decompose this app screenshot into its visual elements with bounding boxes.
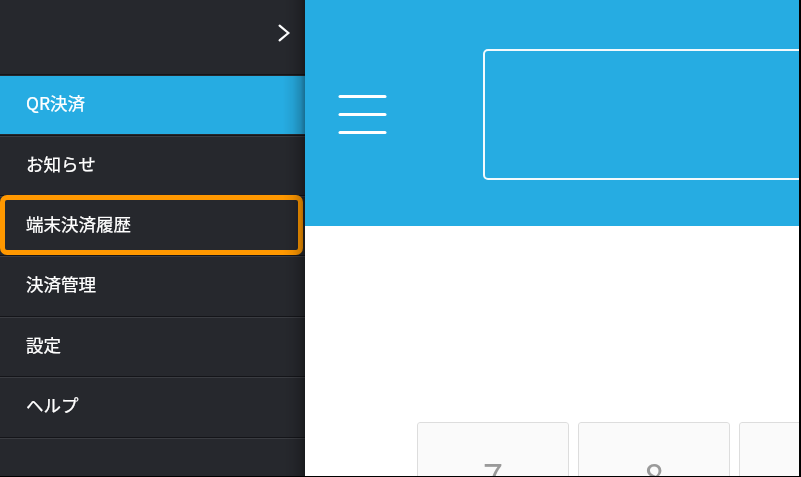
button[interactable]: Menu <box>331 87 393 141</box>
button[interactable]: 9 <box>739 422 801 477</box>
button[interactable]: 決済管理 <box>0 255 305 315</box>
button[interactable]: 端末決済履歴 <box>0 195 305 255</box>
staticText: 決済管理 <box>26 271 96 296</box>
button[interactable]: ヘルプ <box>0 376 305 436</box>
staticText: 端末決済履歴 <box>26 211 131 236</box>
staticText: 8 <box>644 448 664 477</box>
button[interactable]: 7 <box>417 422 569 477</box>
staticText: お知らせ <box>26 151 96 176</box>
button[interactable]: 8 <box>578 422 730 477</box>
button[interactable]: QR決済 <box>0 74 305 134</box>
button[interactable]: お知らせ <box>0 135 305 195</box>
button[interactable] <box>0 437 305 477</box>
staticText: QR決済 <box>26 90 86 115</box>
staticText: 設定 <box>26 332 61 357</box>
staticText: 7 <box>483 448 503 477</box>
button[interactable]: Expand account <box>261 10 306 55</box>
button[interactable]: 設定 <box>0 316 305 376</box>
staticText: ヘルプ <box>26 392 79 417</box>
